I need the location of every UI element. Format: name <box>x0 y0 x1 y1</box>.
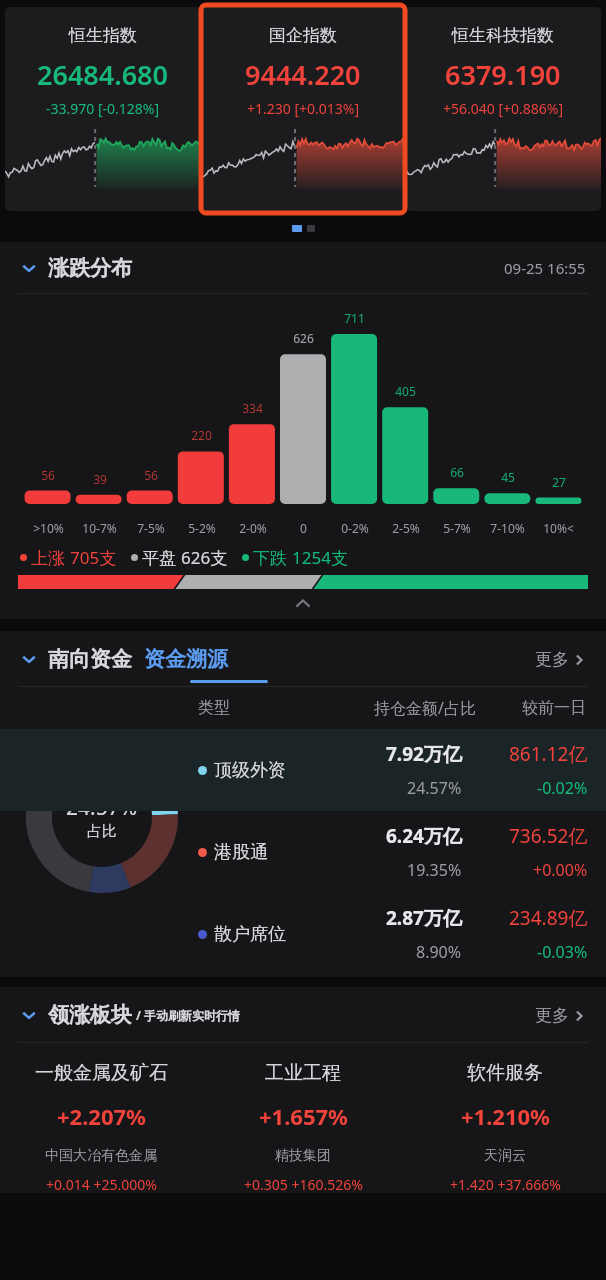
staticText: 6379.190 <box>445 56 561 93</box>
staticText: / 手动刷新实时行情 <box>136 1007 241 1023</box>
staticText: 7-5% <box>137 520 165 536</box>
button[interactable]: 恒生指数 <box>5 7 201 211</box>
button[interactable]: 港股通 <box>0 811 606 893</box>
button[interactable]: 工业工程 <box>202 1043 404 1193</box>
staticText: 56 <box>144 467 158 483</box>
button[interactable]: 资金溯源 <box>144 646 228 672</box>
staticText: +0.00% <box>533 859 588 881</box>
staticText: 0-2% <box>341 520 369 536</box>
staticText: 39 <box>93 471 107 487</box>
staticText: +1.657% <box>259 1101 348 1131</box>
staticText: 56 <box>41 467 55 483</box>
staticText: 0 <box>300 520 307 536</box>
staticText: 散户席位 <box>214 923 286 946</box>
staticText: +1.210% <box>461 1101 550 1131</box>
button[interactable]: 一般金属及矿石 <box>0 1043 202 1193</box>
staticText: -33.970 [-0.128%] <box>46 99 160 118</box>
button[interactable]: Collapse <box>0 589 606 619</box>
staticText: 24.57% <box>66 793 138 822</box>
staticText: 国企指数 <box>269 25 337 46</box>
staticText: 中国大冶有色金属 <box>45 1147 157 1165</box>
staticText: >10% <box>33 520 64 536</box>
staticText: 334 <box>242 400 263 416</box>
button[interactable]: 顶级外资 <box>0 729 606 811</box>
button[interactable]: 散户席位 <box>0 893 606 975</box>
staticText: 类型 <box>198 698 230 718</box>
staticText: 7.92万亿 <box>386 741 462 767</box>
staticText: 234.89亿 <box>509 905 588 931</box>
staticText: 下跌 <box>253 546 292 569</box>
staticText: 精技集团 <box>275 1147 331 1165</box>
staticText: 占比 <box>87 822 117 841</box>
staticText: 港股通 <box>214 841 268 864</box>
staticText: +1.230 [+0.013%] <box>247 99 360 118</box>
staticText: 5-2% <box>188 520 216 536</box>
staticText: +1.420 +37.666% <box>450 1175 561 1193</box>
staticText: 2-5% <box>392 520 420 536</box>
staticText: 1254支 <box>292 546 348 569</box>
staticText: 6.24万亿 <box>386 823 462 849</box>
staticText: +2.207% <box>57 1101 146 1131</box>
staticText: -0.02% <box>537 777 588 799</box>
staticText: -0.03% <box>537 941 588 963</box>
staticText: 较前一日 <box>522 698 586 718</box>
staticText: 09-25 16:55 <box>504 258 586 278</box>
staticText: 26484.680 <box>37 56 169 93</box>
staticText: 405 <box>395 383 416 399</box>
staticText: 220 <box>191 427 212 443</box>
staticText: 8.90% <box>416 941 462 963</box>
staticText: 10-7% <box>82 520 117 536</box>
staticText: 平盘 <box>142 546 181 569</box>
staticText: 恒生指数 <box>69 25 137 46</box>
staticText: 711 <box>344 310 365 326</box>
staticText: 19.35% <box>407 859 462 881</box>
staticText: 软件服务 <box>467 1061 543 1085</box>
staticText: 南向资金 <box>48 646 132 672</box>
staticText: 24.57% <box>407 777 462 799</box>
staticText: 736.52亿 <box>509 823 588 849</box>
staticText: 一般金属及矿石 <box>35 1061 168 1085</box>
staticText: +56.040 [+0.886%] <box>443 99 564 118</box>
staticText: +0.014 +25.000% <box>46 1175 157 1193</box>
staticText: 66 <box>450 464 464 480</box>
staticText: 9444.220 <box>245 56 361 93</box>
button[interactable]: 更多 <box>535 1005 586 1026</box>
staticText: 更多 <box>535 649 569 670</box>
staticText: 5-7% <box>443 520 471 536</box>
staticText: 上涨 <box>31 546 70 569</box>
staticText: 2-0% <box>239 520 267 536</box>
staticText: +0.305 +160.526% <box>244 1175 363 1193</box>
staticText: 705支 <box>70 546 117 569</box>
button[interactable]: 更多 <box>535 649 586 670</box>
staticText: 涨跌分布 <box>48 255 132 281</box>
staticText: 恒生科技指数 <box>452 25 554 46</box>
staticText: 27 <box>552 474 566 490</box>
staticText: 2.87万亿 <box>386 905 462 931</box>
staticText: 领涨板块 <box>48 1002 132 1028</box>
staticText: 7-10% <box>490 520 525 536</box>
staticText: 顶级外资 <box>214 759 286 782</box>
staticText: 861.12亿 <box>509 741 588 767</box>
button[interactable]: 软件服务 <box>404 1043 606 1193</box>
staticText: 工业工程 <box>265 1061 341 1085</box>
button[interactable]: 恒生科技指数 <box>405 7 601 211</box>
staticText: 626支 <box>181 546 228 569</box>
button[interactable]: 国企指数 <box>203 7 403 211</box>
staticText: 资金溯源 <box>144 646 228 672</box>
staticText: 45 <box>501 469 515 485</box>
staticText: 持仓金额/占比 <box>374 697 476 719</box>
staticText: 626 <box>293 330 314 346</box>
staticText: 10%< <box>543 520 574 536</box>
staticText: 天润云 <box>484 1147 526 1165</box>
staticText: 更多 <box>535 1005 569 1026</box>
